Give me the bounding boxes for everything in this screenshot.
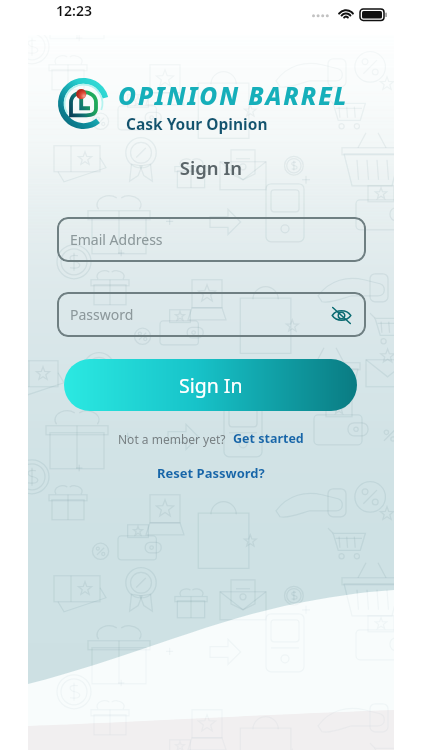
button[interactable]: Reset Password? bbox=[157, 464, 265, 482]
staticText: Sign In bbox=[179, 372, 243, 399]
staticText: Password bbox=[70, 305, 134, 324]
staticText: Reset Password? bbox=[157, 464, 265, 482]
staticText: Not a member yet? bbox=[118, 431, 226, 447]
staticText: Get started bbox=[233, 430, 304, 447]
staticText: Email Address bbox=[70, 230, 163, 249]
staticText: OPINION BARREL bbox=[118, 79, 349, 112]
button[interactable]: Show password bbox=[324, 298, 358, 332]
staticText: Sign In bbox=[28, 155, 394, 180]
button[interactable]: Sign In bbox=[64, 359, 357, 411]
button[interactable]: Email Address bbox=[57, 217, 366, 262]
button[interactable]: Get started bbox=[233, 430, 304, 447]
staticText: Cask Your Opinion bbox=[126, 113, 268, 134]
button[interactable]: Password bbox=[57, 292, 366, 337]
staticText: 12:23 bbox=[56, 1, 92, 20]
